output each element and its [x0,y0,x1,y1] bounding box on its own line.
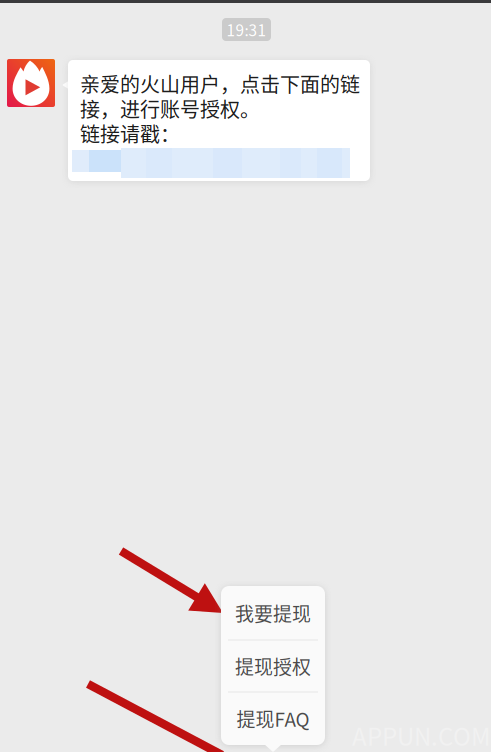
button[interactable]: 提现FAQ [221,692,325,744]
button[interactable]: 我要提现 [221,586,325,639]
staticText: 提现授权 [235,652,311,680]
staticText: 19:31 [226,18,266,41]
button[interactable]: 提现授权 [221,640,325,691]
staticText: 亲爱的火山用户，点击下面的链 接，进行账号授权。 链接请戳： [80,69,360,148]
staticText: 提现FAQ [236,705,309,732]
staticText: 我要提现 [235,599,311,627]
